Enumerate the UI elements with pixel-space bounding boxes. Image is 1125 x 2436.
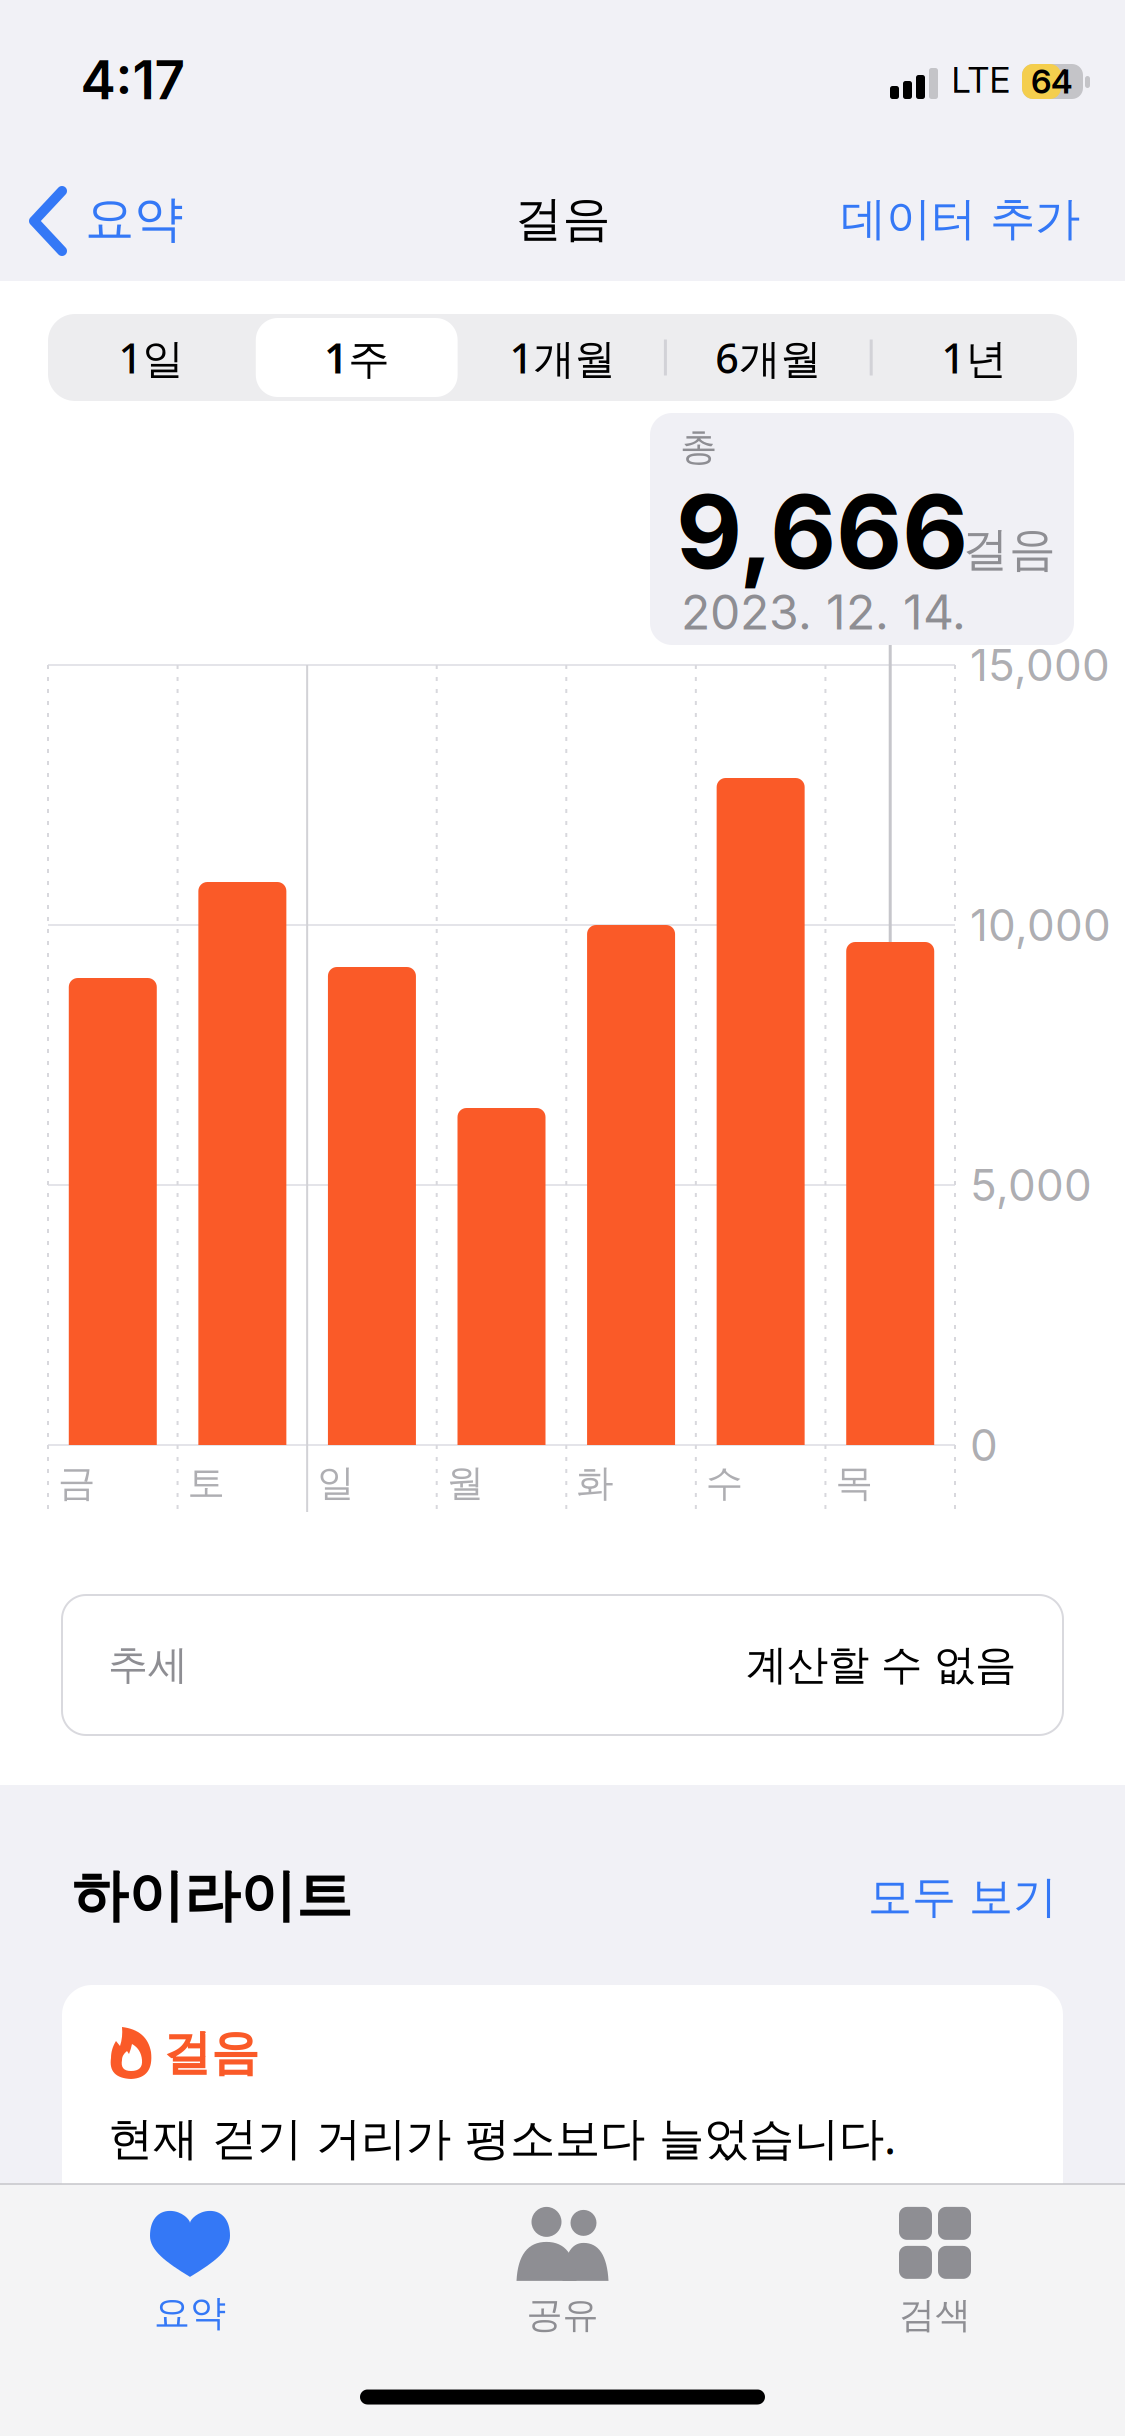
staticText: 10,000: [970, 898, 1111, 952]
staticText: 9,666: [676, 470, 968, 593]
staticText: 모두 보기: [868, 1870, 1057, 1924]
button[interactable]: 요약: [40, 2187, 340, 2357]
staticText: 일: [317, 1460, 354, 1506]
button[interactable]: 데이터 추가: [680, 169, 1080, 269]
staticText: 월: [447, 1460, 484, 1506]
staticText: 화: [576, 1460, 613, 1506]
staticText: 걸음: [962, 521, 1056, 578]
staticText: LTE: [951, 59, 1010, 101]
staticText: 6개월: [715, 330, 821, 385]
staticText: 5,000: [970, 1158, 1092, 1212]
button[interactable]: 1일: [48, 314, 254, 401]
staticText: 걸음: [163, 2023, 259, 2082]
staticText: 2023. 12. 14.: [681, 583, 966, 641]
button[interactable]: 걸음: [62, 1985, 1063, 2285]
staticText: 토: [188, 1460, 225, 1506]
staticText: 목: [835, 1460, 872, 1506]
staticText: 하이라이트: [72, 1862, 352, 1930]
button[interactable]: 1주: [254, 314, 460, 401]
button[interactable]: 1개월: [460, 314, 665, 401]
staticText: 데이터 추가: [841, 191, 1080, 247]
staticText: 요약: [154, 2291, 226, 2335]
staticText: 총: [680, 424, 717, 470]
staticText: 계산할 수 없음: [746, 1640, 1016, 1690]
staticText: 공유: [526, 2293, 598, 2337]
button[interactable]: 뒤로, 요약: [0, 0, 230, 110]
staticText: 0: [970, 1418, 998, 1472]
staticText: 1년: [942, 330, 1007, 385]
staticText: 4:17: [80, 48, 185, 112]
button[interactable]: 6개월: [665, 314, 871, 401]
staticText: 걸음: [514, 189, 610, 248]
staticText: 1일: [118, 330, 183, 385]
button[interactable]: 1년: [871, 314, 1077, 401]
staticText: 금: [58, 1460, 95, 1506]
button[interactable]: 검색: [785, 2187, 1085, 2357]
staticText: 1주: [324, 330, 389, 385]
button[interactable]: 모두 보기: [757, 1852, 1057, 1942]
staticText: 요약: [85, 189, 183, 249]
staticText: 검색: [899, 2293, 971, 2337]
button[interactable]: 공유: [412, 2187, 712, 2357]
staticText: 추세: [108, 1640, 188, 1689]
staticText: 64: [1031, 61, 1073, 101]
staticText: 1개월: [509, 330, 615, 385]
staticText: 수: [706, 1460, 743, 1506]
staticText: 15,000: [970, 638, 1110, 692]
staticText: 현재 걷기 거리가 평소보다 늘었습니다.: [108, 2107, 896, 2167]
